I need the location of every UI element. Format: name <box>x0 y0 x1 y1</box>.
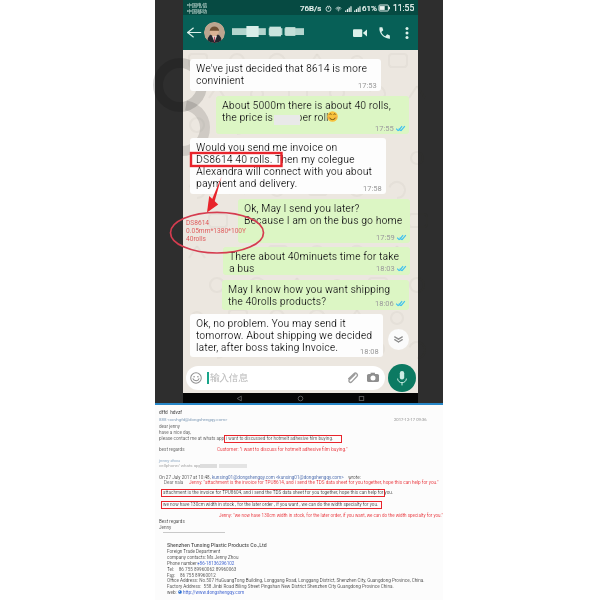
staticText: wrote: <box>347 475 361 480</box>
staticText: Ok, May I send you later? <box>244 202 360 214</box>
staticText: Because I am on the bus go home <box>244 214 403 226</box>
staticText: Foreign Trade Department <box>167 549 221 554</box>
staticText: 0.05mm*1380*100Y <box>186 227 247 235</box>
staticText: please contact me at whats app: <box>159 436 226 441</box>
staticText: 17:58 <box>363 184 382 193</box>
staticText: company contacts: Ms.Jenny Zhou <box>167 555 239 560</box>
staticText: 18:08 <box>360 347 379 356</box>
staticText: DS8614 <box>186 219 210 227</box>
staticText: 输入信息 <box>210 372 248 384</box>
staticText: About 5000m there is about 40 rolls, <box>222 99 391 111</box>
staticText: convinient <box>196 74 245 86</box>
staticText: kunsing01@dongshengqy.com <kunsing01@don… <box>212 475 344 480</box>
staticText: have a nice day, <box>159 430 191 435</box>
staticText: dear jenny <box>159 424 181 429</box>
staticText: 888 <xcvhgfd@dongshengqy.com> <box>159 417 228 422</box>
staticText: Would you send me invoice on <box>196 141 338 153</box>
staticText: 17:59 <box>376 233 395 242</box>
staticText: 18:03 <box>376 264 395 273</box>
staticText: Jenny: "we now have 130cm width in stock… <box>219 513 443 518</box>
button[interactable]: 输入信息 <box>186 366 385 390</box>
staticText: 76B/s <box>300 4 322 13</box>
staticText: Dear nala <box>164 480 184 485</box>
staticText: Tel: 86 755 89960062 89960063 <box>167 567 237 572</box>
staticText: On 27 July 2017 at 10:48, <box>159 475 212 480</box>
staticText: a bus <box>229 262 255 274</box>
button[interactable]: Back <box>183 15 204 50</box>
staticText: payment and delivery. <box>196 177 298 189</box>
button[interactable]: Voice call <box>372 15 396 50</box>
staticText: 17:53 <box>358 81 377 90</box>
staticText: Ok, no problem. You may send it <box>196 317 346 329</box>
staticText: attachment is the invoice for TPU8604, a… <box>163 490 394 495</box>
staticText: dffd hdvzf <box>159 410 183 416</box>
staticText: tomorrow. About shipping we decided <box>196 329 373 341</box>
staticText: 17:55 <box>375 124 394 133</box>
button[interactable]: Scroll to bottom <box>388 329 409 350</box>
staticText: 中国移动 <box>187 8 207 14</box>
staticText: we now have 130cm width in stock , for t… <box>163 502 379 507</box>
staticText: 18:06 <box>375 299 394 308</box>
staticText: 中国电信 <box>187 2 207 8</box>
button[interactable]: Contact photo <box>204 22 225 43</box>
button[interactable]: Ok, no problem. You may send it <box>190 314 383 357</box>
staticText: Factory Address: 558 Jinbi Road Biling S… <box>167 584 394 589</box>
staticText: the 40rolls products? <box>228 295 327 307</box>
staticText: i want to discussed for hotmelt adhesive… <box>226 436 334 441</box>
staticText: best regards <box>159 447 185 452</box>
staticText: 40rolls <box>186 235 206 243</box>
staticText: 61% <box>362 4 377 13</box>
staticText: 2017-12-17 09:36 <box>394 417 427 422</box>
button[interactable]: Back <box>235 394 244 403</box>
staticText: Best regards <box>159 519 185 524</box>
staticText: We've just decided that 8614 is more <box>196 62 367 74</box>
button[interactable]: There about 40minuets time for take <box>223 247 410 275</box>
staticText: jenny zhou <box>159 458 180 463</box>
staticText: Office Address: No.507 HuGuangTong Build… <box>167 578 425 583</box>
button[interactable]: May I know how you want shipping <box>222 280 409 310</box>
staticText: http://www.dongshengqy.com <box>183 590 245 595</box>
staticText: Fax: 86 755 89960012 <box>167 573 216 578</box>
staticText: cellphone/ whats app: <box>159 463 203 468</box>
staticText: later, after boss taking Invoice. <box>196 341 339 353</box>
button[interactable]: About 5000m there is about 40 rolls, <box>216 96 409 134</box>
button[interactable]: Would you send me invoice on <box>190 138 386 194</box>
staticText: 11:55 <box>393 3 415 13</box>
staticText: Alexandra will connect with you about <box>196 165 372 177</box>
staticText: web: <box>167 590 177 595</box>
staticText: Jenny: "attachment is the invoice for TP… <box>189 480 439 485</box>
button[interactable]: Ok, May I send you later? <box>238 199 410 243</box>
button[interactable]: Recent apps <box>357 394 366 403</box>
staticText: Jenny <box>159 525 172 530</box>
staticText: the price is per roll <box>222 111 329 123</box>
button[interactable]: More options <box>396 15 418 50</box>
button[interactable]: Record voice message <box>388 364 416 392</box>
staticText: Customer: "i want to discuss for hotmelt… <box>217 447 348 453</box>
staticText: Phone number: <box>167 561 198 566</box>
staticText: DS8614 40 rolls. Then my colegue <box>196 153 355 165</box>
staticText: There about 40minuets time for take <box>229 250 399 262</box>
staticText: +86-18136296102 <box>197 561 235 566</box>
button[interactable]: We've just decided that 8614 is more <box>190 59 381 91</box>
button[interactable]: Video call <box>348 15 372 50</box>
staticText: May I know how you want shipping <box>228 283 391 295</box>
button[interactable]: Home <box>296 394 305 403</box>
staticText: Shenzhen Tunsing Plastic Products Co.,Lt… <box>167 542 267 548</box>
